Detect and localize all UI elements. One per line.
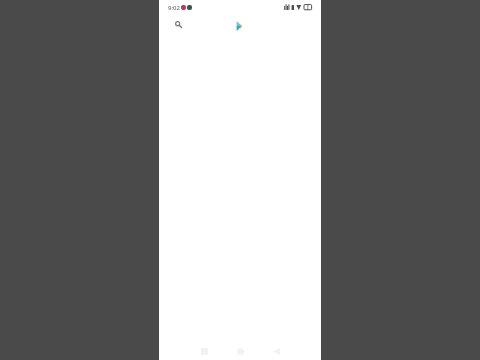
staticText: 9:02	[168, 4, 180, 12]
button[interactable]: Search Google Play	[170, 16, 186, 32]
button[interactable]: Back	[268, 343, 284, 359]
button[interactable]: Google Play	[232, 19, 246, 33]
button[interactable]: Home	[232, 343, 248, 359]
button[interactable]: Recent apps	[196, 343, 212, 359]
